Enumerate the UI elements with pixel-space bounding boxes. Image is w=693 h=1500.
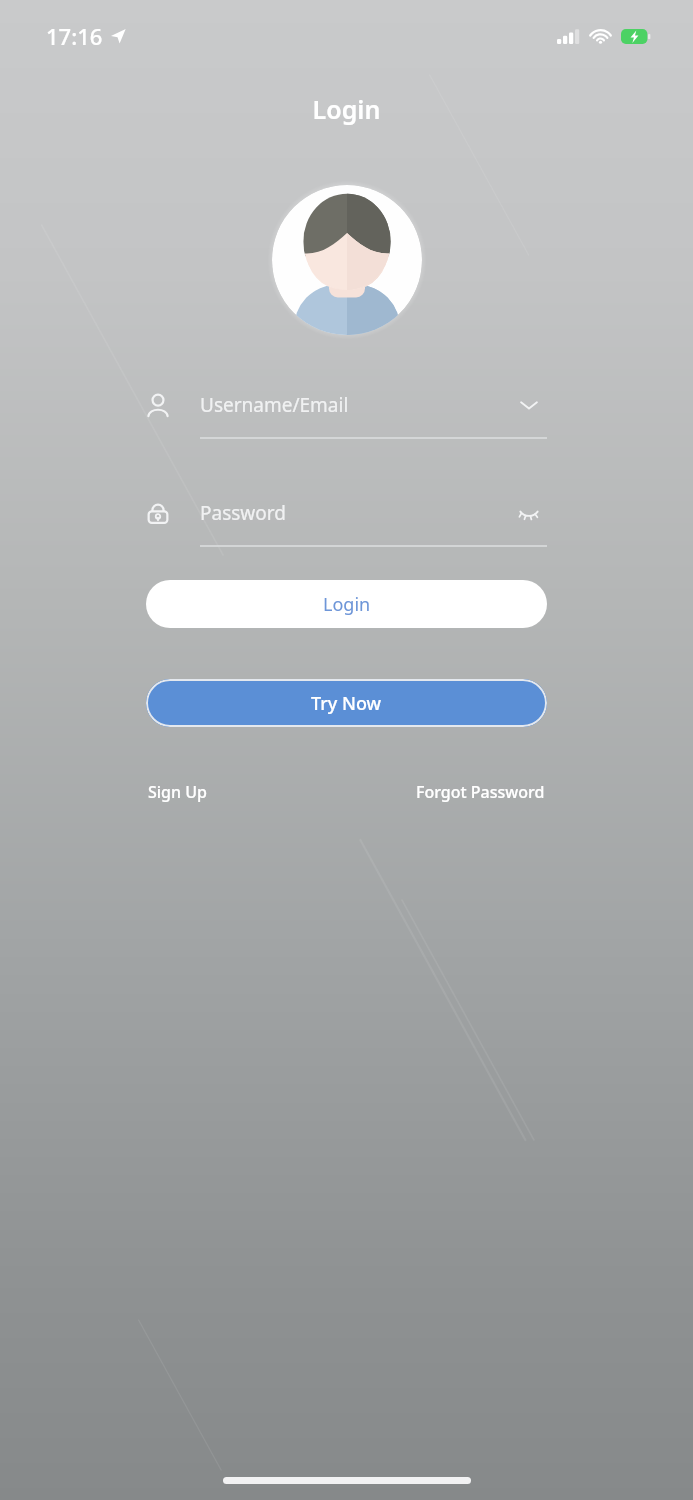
button[interactable]: Try Now <box>146 679 547 727</box>
staticText: Try Now <box>311 691 382 716</box>
button[interactable]: Show accounts <box>512 388 546 422</box>
staticText: Password <box>200 500 512 526</box>
button[interactable]: Password <box>145 494 546 532</box>
staticText: 17:16 <box>46 21 103 51</box>
staticText: Forgot Password <box>416 781 545 803</box>
staticText: Login <box>323 592 371 617</box>
button[interactable]: Login <box>146 580 547 628</box>
staticText: Sign Up <box>148 781 207 803</box>
button[interactable]: Forgot Password <box>414 777 547 807</box>
staticText: Username/Email <box>200 392 512 418</box>
button[interactable]: Show password <box>512 496 546 530</box>
staticText: Login <box>0 92 693 126</box>
button[interactable]: Sign Up <box>146 777 209 807</box>
button[interactable]: Username/Email <box>145 386 546 424</box>
